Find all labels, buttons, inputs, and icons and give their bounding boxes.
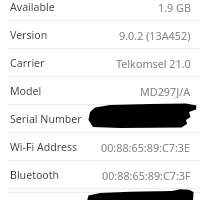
staticText: Serial Number xyxy=(10,112,82,126)
button[interactable]: Available xyxy=(0,0,200,21)
staticText: Carrier xyxy=(10,56,45,70)
button[interactable]: Serial Number xyxy=(0,105,200,133)
button[interactable]: Carrier xyxy=(0,49,200,77)
staticText: 9.0.2 (13A452) xyxy=(119,28,191,43)
button[interactable]: Model xyxy=(0,77,200,105)
staticText: Version xyxy=(10,28,48,42)
staticText: MD297J/A xyxy=(140,84,191,99)
button[interactable]: Bluetooth xyxy=(0,161,200,189)
button[interactable]: Version xyxy=(0,21,200,49)
staticText: 00:88:65:89:C7:3F xyxy=(102,168,191,183)
other: Redacted values xyxy=(0,0,200,200)
staticText: 00:88:65:89:C7:3E xyxy=(101,140,191,155)
staticText: 1.9 GB xyxy=(158,0,191,15)
button[interactable]: IMEI xyxy=(0,189,200,193)
staticText: Wi-Fi Address xyxy=(10,140,78,154)
staticText: Model xyxy=(10,84,42,98)
staticText: Available xyxy=(10,0,55,14)
staticText: IMEI xyxy=(10,189,33,193)
staticText: Telkomsel 21.0 xyxy=(116,56,191,71)
staticText: Bluetooth xyxy=(10,168,60,182)
button[interactable]: Wi-Fi Address xyxy=(0,133,200,161)
